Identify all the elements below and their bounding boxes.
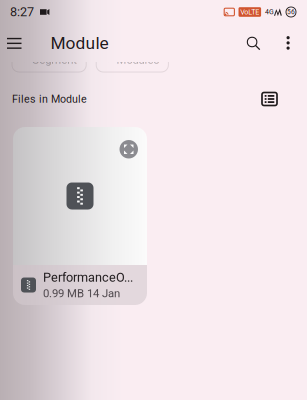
staticText: Module <box>50 33 108 53</box>
staticText: 8:27 <box>10 5 34 19</box>
staticText: 0.99 MB 14 Jan <box>43 287 120 300</box>
staticText: 4G <box>265 8 274 16</box>
button[interactable]: Switch to list view <box>256 86 283 111</box>
button[interactable]: More options <box>279 32 297 54</box>
staticText: PerformanceO... <box>43 270 133 285</box>
button[interactable]: Open navigation menu <box>0 30 28 56</box>
staticText: 56 <box>287 8 295 16</box>
staticText: Modules <box>116 53 159 67</box>
staticText: Files in Module <box>12 93 87 105</box>
button[interactable]: Segment <box>12 48 86 72</box>
staticText: Segment <box>32 53 77 67</box>
button[interactable]: Search <box>240 30 266 56</box>
staticText: VoLTE <box>240 8 259 16</box>
button[interactable]: Modules <box>96 48 168 72</box>
